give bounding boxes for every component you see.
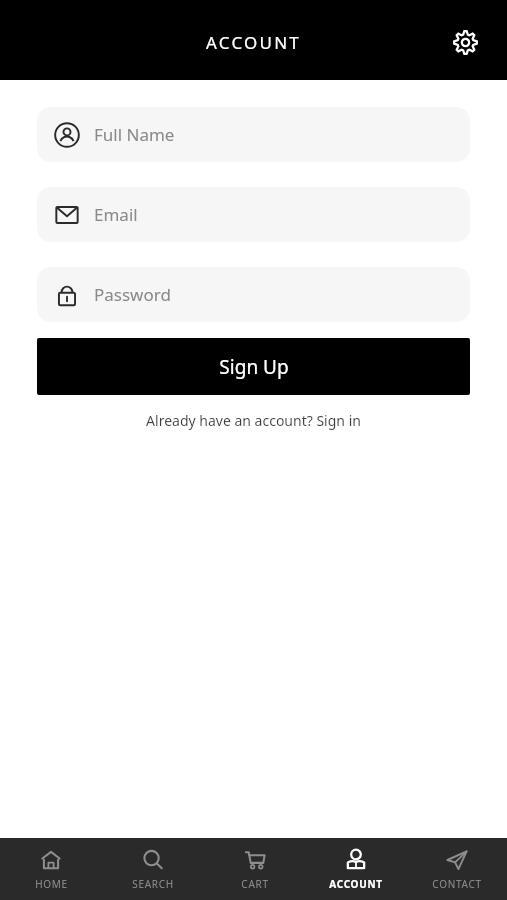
button[interactable]: ACCOUNT: [305, 838, 406, 900]
button[interactable]: Sign Up: [37, 338, 470, 395]
button[interactable]: Already have an account? Sign in: [0, 411, 507, 430]
button[interactable]: CART: [204, 838, 305, 900]
staticText: Sign Up: [219, 354, 289, 380]
staticText: ACCOUNT: [206, 31, 301, 54]
button[interactable]: SEARCH: [102, 838, 204, 900]
button[interactable]: HOME: [0, 838, 102, 900]
staticText: Password: [94, 283, 171, 306]
staticText: Already have an account? Sign in: [146, 411, 361, 430]
staticText: Full Name: [94, 123, 175, 146]
staticText: Email: [94, 203, 138, 226]
button[interactable]: Full Name: [37, 107, 470, 162]
button[interactable]: Password: [37, 267, 470, 322]
staticText: SEARCH: [132, 877, 174, 891]
staticText: CART: [241, 877, 269, 891]
staticText: ACCOUNT: [329, 877, 383, 891]
button[interactable]: Settings: [445, 22, 485, 62]
button[interactable]: Email: [37, 187, 470, 242]
staticText: HOME: [35, 877, 68, 891]
button[interactable]: CONTACT: [406, 838, 507, 900]
staticText: CONTACT: [432, 877, 482, 891]
